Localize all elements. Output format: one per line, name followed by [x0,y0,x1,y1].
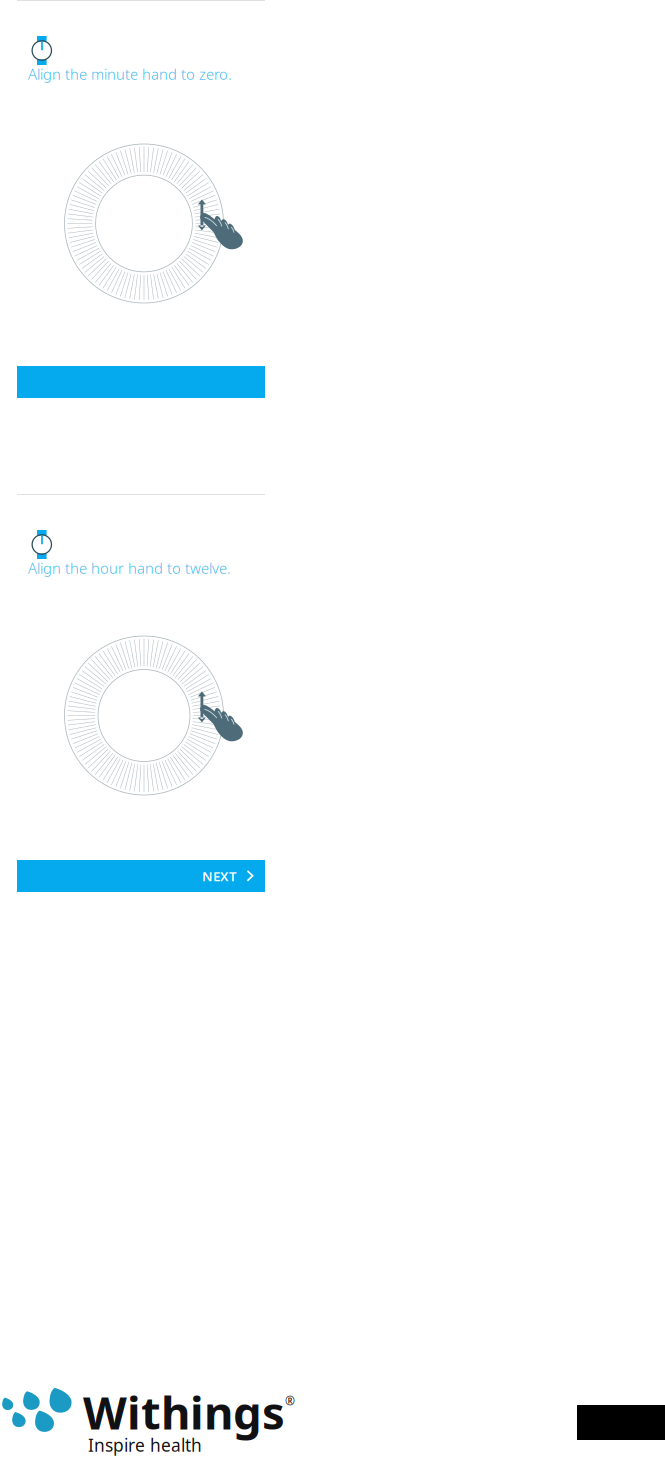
staticText: NEXT [202,867,237,885]
button[interactable]: Next [17,860,265,892]
staticText: Align the hour hand to twelve. [28,558,231,578]
staticText: ® [285,1393,295,1409]
staticText: Inspire health [88,1433,202,1456]
staticText: Align the minute hand to zero. [28,64,232,84]
staticText: Withings [83,1382,285,1442]
